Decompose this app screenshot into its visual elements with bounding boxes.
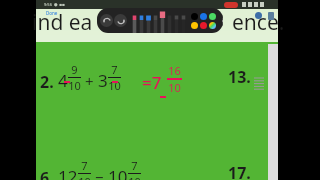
staticText: 7 xyxy=(81,158,88,173)
staticText: − xyxy=(95,167,104,180)
button[interactable]: Colour picker xyxy=(209,22,216,29)
staticText: 17. xyxy=(228,162,251,180)
staticText: 13. xyxy=(228,66,251,88)
button[interactable]: Pen tool xyxy=(166,8,173,33)
staticText: 12 xyxy=(58,165,78,180)
staticText: 7 xyxy=(131,158,138,173)
button[interactable]: Pen tool xyxy=(180,8,187,33)
button[interactable]: Add xyxy=(222,14,223,27)
staticText: 9:56 ● ▪▪ xyxy=(44,2,66,7)
staticText: 16 xyxy=(168,63,181,78)
staticText: 9 xyxy=(71,62,78,77)
staticText: 10 xyxy=(128,174,141,180)
button[interactable]: Pen tool xyxy=(131,8,138,33)
staticText: + xyxy=(85,71,94,91)
staticText: 10 xyxy=(168,80,181,95)
staticText: 2. xyxy=(40,71,54,93)
button[interactable]: Pen tool xyxy=(145,8,152,33)
button[interactable]: Pen tool xyxy=(159,8,166,33)
button[interactable]: Pen tool xyxy=(138,8,145,33)
staticText: =7 xyxy=(142,71,162,94)
staticText: 10 xyxy=(68,78,81,93)
button[interactable]: Red xyxy=(200,22,207,29)
staticText: 7 xyxy=(111,62,118,77)
staticText: 10 xyxy=(108,165,128,180)
button[interactable]: Undo xyxy=(100,14,113,27)
staticText: 6. xyxy=(40,167,54,180)
staticText: 4 xyxy=(58,69,68,92)
button[interactable]: Yellow xyxy=(191,22,198,29)
button[interactable]: Green xyxy=(209,13,216,20)
staticText: ence. xyxy=(232,8,285,37)
staticText: 3 xyxy=(98,69,108,92)
staticText: 10 xyxy=(78,174,91,180)
staticText: ind ea xyxy=(32,8,93,37)
button[interactable]: Black xyxy=(191,13,198,20)
staticText: 10 xyxy=(108,78,121,93)
button[interactable]: Pen tool xyxy=(152,8,159,33)
staticText: Done xyxy=(46,10,58,16)
button[interactable]: Redo xyxy=(114,14,127,27)
button[interactable]: Blue xyxy=(200,13,207,20)
button[interactable]: Pen tool xyxy=(173,8,180,33)
